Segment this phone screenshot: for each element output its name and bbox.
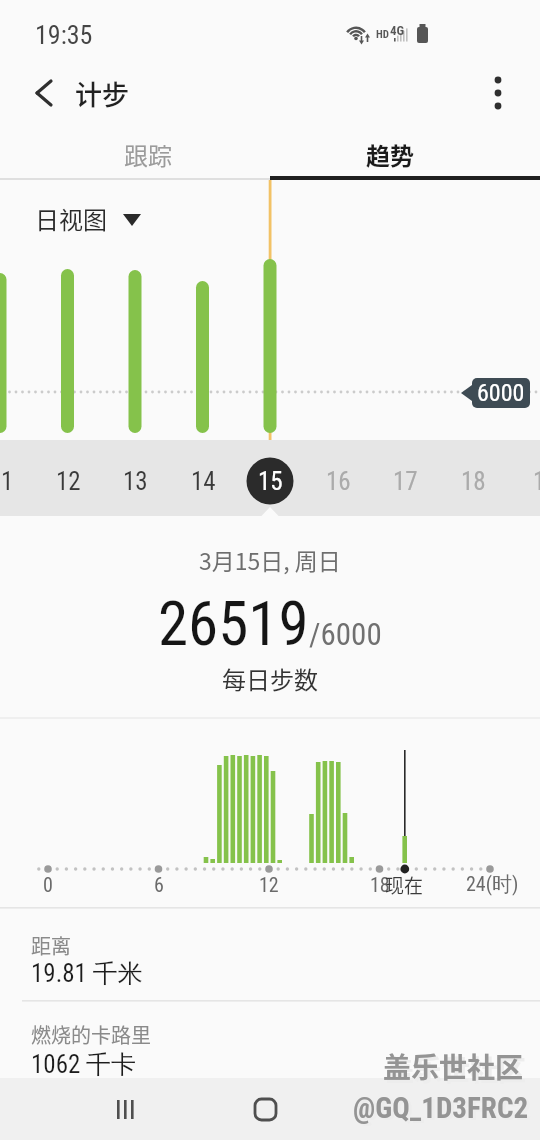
staticText: 计步 <box>75 74 129 113</box>
staticText: @GQ_1D3FRC2 <box>356 1093 532 1127</box>
button[interactable] <box>25 196 155 240</box>
staticText: HD <box>376 28 389 41</box>
staticText: 4G <box>390 23 405 38</box>
staticText: 跟踪 <box>124 137 172 172</box>
staticText: 1 <box>1 467 14 496</box>
staticText: 18 <box>461 467 486 496</box>
staticText: /6000 <box>309 616 382 652</box>
button[interactable] <box>246 457 294 505</box>
staticText: 距离 <box>31 931 71 960</box>
staticText: 19.81 千米 <box>31 958 143 989</box>
staticText: 1 <box>533 467 540 496</box>
staticText: 燃烧的卡路里 <box>31 1020 151 1049</box>
staticText: 3月15日, 周日 <box>199 543 341 576</box>
staticText: 1062 千卡 <box>31 1049 137 1080</box>
staticText: 盖乐世社区 <box>383 1046 524 1087</box>
staticText: 0 <box>43 873 53 896</box>
button[interactable] <box>205 1078 325 1140</box>
staticText: 24(时) <box>466 872 519 897</box>
staticText: 14 <box>191 467 216 496</box>
staticText: 15 <box>258 467 283 496</box>
staticText: 13 <box>123 467 148 496</box>
staticText: 12 <box>56 467 81 496</box>
staticText: @GQ_1D3FRC2 <box>353 1091 529 1125</box>
staticText: 17 <box>393 467 418 496</box>
staticText: 18 <box>370 873 390 896</box>
staticText: 19:35 <box>35 20 93 50</box>
button[interactable] <box>65 1078 185 1140</box>
staticText: 12 <box>259 873 279 896</box>
staticText: 26519 <box>158 588 309 659</box>
button[interactable]: 趋势 <box>270 128 540 180</box>
button[interactable] <box>473 64 523 120</box>
staticText: 趋势 <box>366 137 414 172</box>
staticText: 6 <box>154 873 164 896</box>
staticText: 16 <box>326 467 351 496</box>
staticText: 盖乐世社区 <box>386 1049 527 1090</box>
staticText: 6000 <box>477 379 525 407</box>
staticText: 现在 <box>385 871 424 899</box>
staticText: 每日步数 <box>222 661 318 696</box>
button[interactable]: 跟踪 <box>0 128 270 180</box>
button[interactable] <box>345 1078 465 1140</box>
button[interactable] <box>20 64 70 120</box>
staticText: 日视图 <box>35 201 107 236</box>
